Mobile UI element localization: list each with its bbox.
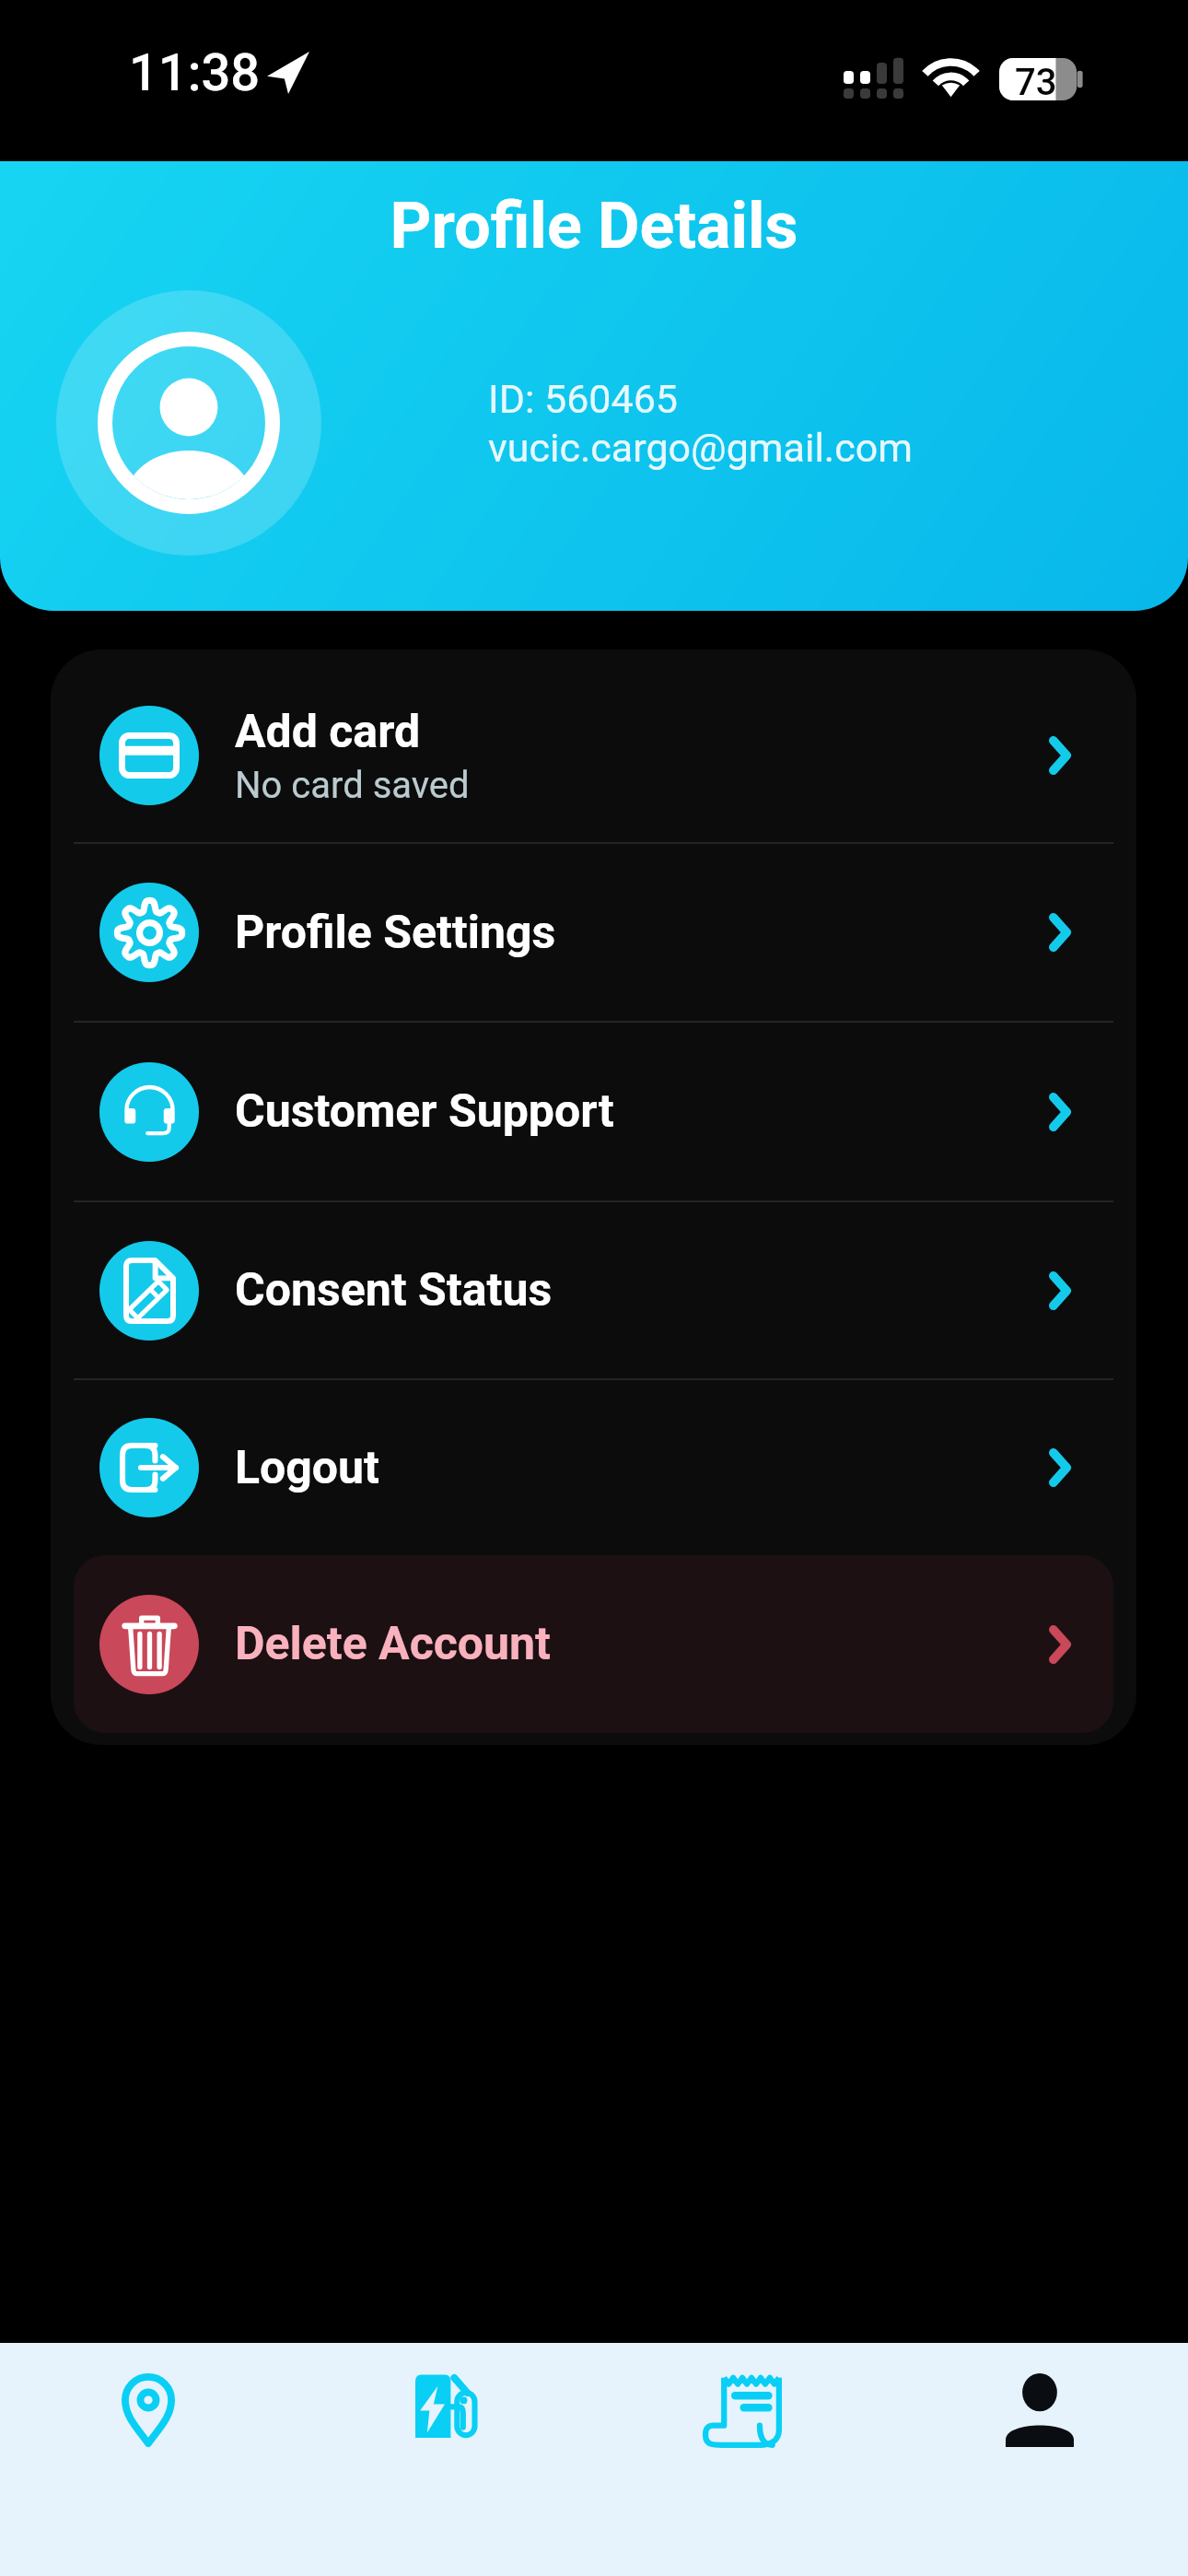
button[interactable]: Add card xyxy=(51,669,1136,842)
button[interactable]: Profile Settings xyxy=(51,844,1136,1021)
staticText: Logout xyxy=(235,1441,379,1495)
staticText: Profile Details xyxy=(0,188,1188,263)
staticText: 11:38 xyxy=(129,42,261,103)
staticText: Delete Account xyxy=(235,1617,1049,1671)
staticText: Profile Settings xyxy=(235,906,556,960)
staticText: ID: 560465 xyxy=(488,376,678,422)
staticText: Consent Status xyxy=(235,1263,553,1317)
button[interactable]: Customer Support xyxy=(51,1023,1136,1200)
staticText: vucic.cargo@gmail.com xyxy=(488,425,913,471)
staticText: Customer Support xyxy=(235,1084,614,1139)
button[interactable]: Logout xyxy=(51,1380,1136,1555)
button[interactable]: Charging xyxy=(297,2343,593,2576)
button[interactable]: Map xyxy=(0,2343,297,2576)
button[interactable]: Consent Status xyxy=(51,1202,1136,1378)
button[interactable]: Delete Account xyxy=(74,1555,1113,1733)
button[interactable]: Profile xyxy=(891,2343,1188,2576)
staticText: Add card xyxy=(235,705,421,759)
staticText: 73 xyxy=(1015,61,1057,103)
staticText: No card saved xyxy=(235,764,470,807)
button[interactable]: Receipts xyxy=(593,2343,891,2576)
